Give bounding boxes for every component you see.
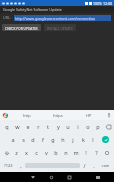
staticText: URL: [3, 15, 11, 20]
staticText: z [15, 149, 18, 156]
button[interactable]: . [89, 159, 98, 172]
button[interactable]: http://www.googleusercontent.com/connect… [14, 15, 111, 21]
button[interactable]: c [31, 146, 41, 159]
button[interactable]: d [28, 133, 38, 146]
staticText: http [23, 113, 31, 118]
staticText: v [45, 149, 48, 156]
staticText: e [26, 123, 30, 130]
button[interactable]: INSTALL UPDATE [44, 24, 76, 31]
button[interactable]: a [7, 133, 18, 146]
staticText: https [53, 113, 63, 118]
button[interactable]: m [71, 146, 81, 159]
staticText: o [86, 123, 90, 130]
staticText: b [54, 149, 58, 156]
button[interactable]: y [53, 120, 63, 133]
button[interactable]: r [33, 120, 43, 133]
button[interactable]: l [88, 133, 98, 146]
button[interactable]: h [58, 133, 68, 146]
button[interactable]: , [16, 159, 25, 172]
staticText: a [11, 136, 15, 143]
button[interactable]: Keyboard [89, 172, 107, 182]
staticText: .com [101, 163, 110, 168]
staticText: 12:00 [103, 1, 112, 6]
staticText: i [77, 123, 79, 130]
button[interactable]: ?123 [1, 159, 16, 172]
staticText: y [57, 123, 60, 130]
button[interactable]: w [12, 120, 23, 133]
button[interactable]: i [73, 120, 83, 133]
button[interactable]: k [78, 133, 88, 146]
button[interactable]: x [21, 146, 31, 159]
button[interactable]: Backspace [103, 120, 113, 133]
staticText: INSTALL UPDATE [47, 26, 73, 30]
button[interactable]: b [51, 146, 61, 159]
staticText: r [37, 123, 40, 130]
staticText: n [64, 149, 68, 156]
staticText: http://www.googleusercontent.com/connect… [15, 16, 96, 21]
staticText: p [96, 123, 100, 130]
staticText: HP [86, 113, 92, 118]
button[interactable]: http [11, 110, 42, 120]
staticText: c [35, 149, 38, 156]
button[interactable]: Voice input [104, 110, 114, 120]
button[interactable]: e [23, 120, 33, 133]
button[interactable]: Emoji [101, 146, 113, 159]
staticText: j [72, 136, 74, 143]
button[interactable]: u [63, 120, 73, 133]
button[interactable]: Google [0, 110, 11, 120]
staticText: m [73, 149, 79, 156]
button[interactable]: p [93, 120, 103, 133]
button[interactable]: CHECK FOR UPDATES [2, 24, 41, 31]
button[interactable]: Recents [60, 172, 78, 182]
button[interactable]: v [41, 146, 51, 159]
button[interactable]: s [18, 133, 28, 146]
staticText: h [61, 136, 65, 143]
button[interactable]: n [61, 146, 71, 159]
button[interactable]: j [68, 133, 78, 146]
button[interactable]: g [48, 133, 58, 146]
staticText: ?123 [4, 163, 13, 168]
staticText: g [51, 136, 55, 143]
button[interactable]: ! [81, 146, 91, 159]
staticText: ! [85, 149, 87, 156]
button[interactable]: / [80, 159, 89, 172]
staticText: l [92, 136, 94, 143]
button[interactable]: HP [73, 110, 104, 120]
button[interactable]: Home [42, 172, 60, 182]
button[interactable]: o [83, 120, 93, 133]
button[interactable]: Back [24, 172, 42, 182]
staticText: k [82, 136, 85, 143]
button[interactable]: ? [91, 146, 101, 159]
button[interactable]: Shift [1, 146, 12, 159]
button[interactable]: .com [98, 159, 113, 172]
staticText: u [66, 123, 70, 130]
staticText: q [5, 123, 9, 130]
staticText: s [22, 136, 25, 143]
button[interactable]: z [12, 146, 21, 159]
staticText: / [83, 162, 86, 169]
staticText: . [93, 162, 95, 169]
button[interactable]: t [43, 120, 53, 133]
staticText: d [31, 136, 35, 143]
button[interactable]: f [38, 133, 48, 146]
staticText: , [20, 162, 22, 169]
button[interactable]: Enter [98, 133, 113, 146]
staticText: CHECK FOR UPDATES [5, 26, 38, 30]
button[interactable]: https [42, 110, 73, 120]
staticText: x [25, 149, 28, 156]
button[interactable]: q [1, 120, 12, 133]
staticText: ? [95, 149, 98, 156]
staticText: f [42, 136, 44, 143]
staticText: w [15, 123, 20, 130]
staticText: Google SafetyNet Software Update [3, 7, 62, 12]
staticText: t [47, 123, 49, 130]
staticText: 100% [93, 1, 102, 6]
